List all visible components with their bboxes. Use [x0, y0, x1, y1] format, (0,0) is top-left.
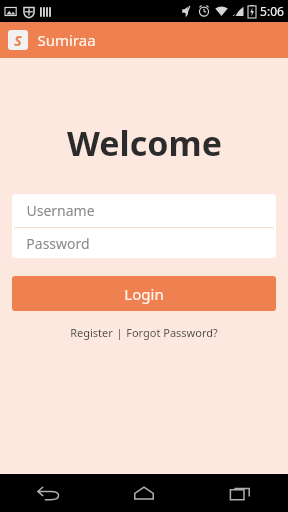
- staticText: S: [14, 31, 22, 50]
- staticText: Forgot Password?: [126, 325, 218, 340]
- button[interactable]: Register: [67, 323, 116, 342]
- staticText: Username: [26, 201, 95, 220]
- button[interactable]: Home: [96, 474, 192, 512]
- button[interactable]: Login: [12, 276, 276, 311]
- staticText: Sumiraa: [37, 30, 96, 50]
- button[interactable]: Username: [12, 194, 276, 227]
- staticText: Register: [70, 325, 113, 340]
- button[interactable]: Back: [0, 474, 96, 512]
- staticText: Welcome: [67, 120, 222, 166]
- button[interactable]: Sumiraa logo: [8, 30, 28, 50]
- staticText: |: [116, 325, 123, 340]
- button[interactable]: Password: [12, 228, 276, 258]
- button[interactable]: Recent apps: [192, 474, 288, 512]
- button[interactable]: Forgot Password?: [123, 323, 221, 342]
- staticText: Password: [26, 234, 90, 253]
- staticText: 5:06: [260, 3, 284, 19]
- staticText: Login: [124, 284, 164, 304]
